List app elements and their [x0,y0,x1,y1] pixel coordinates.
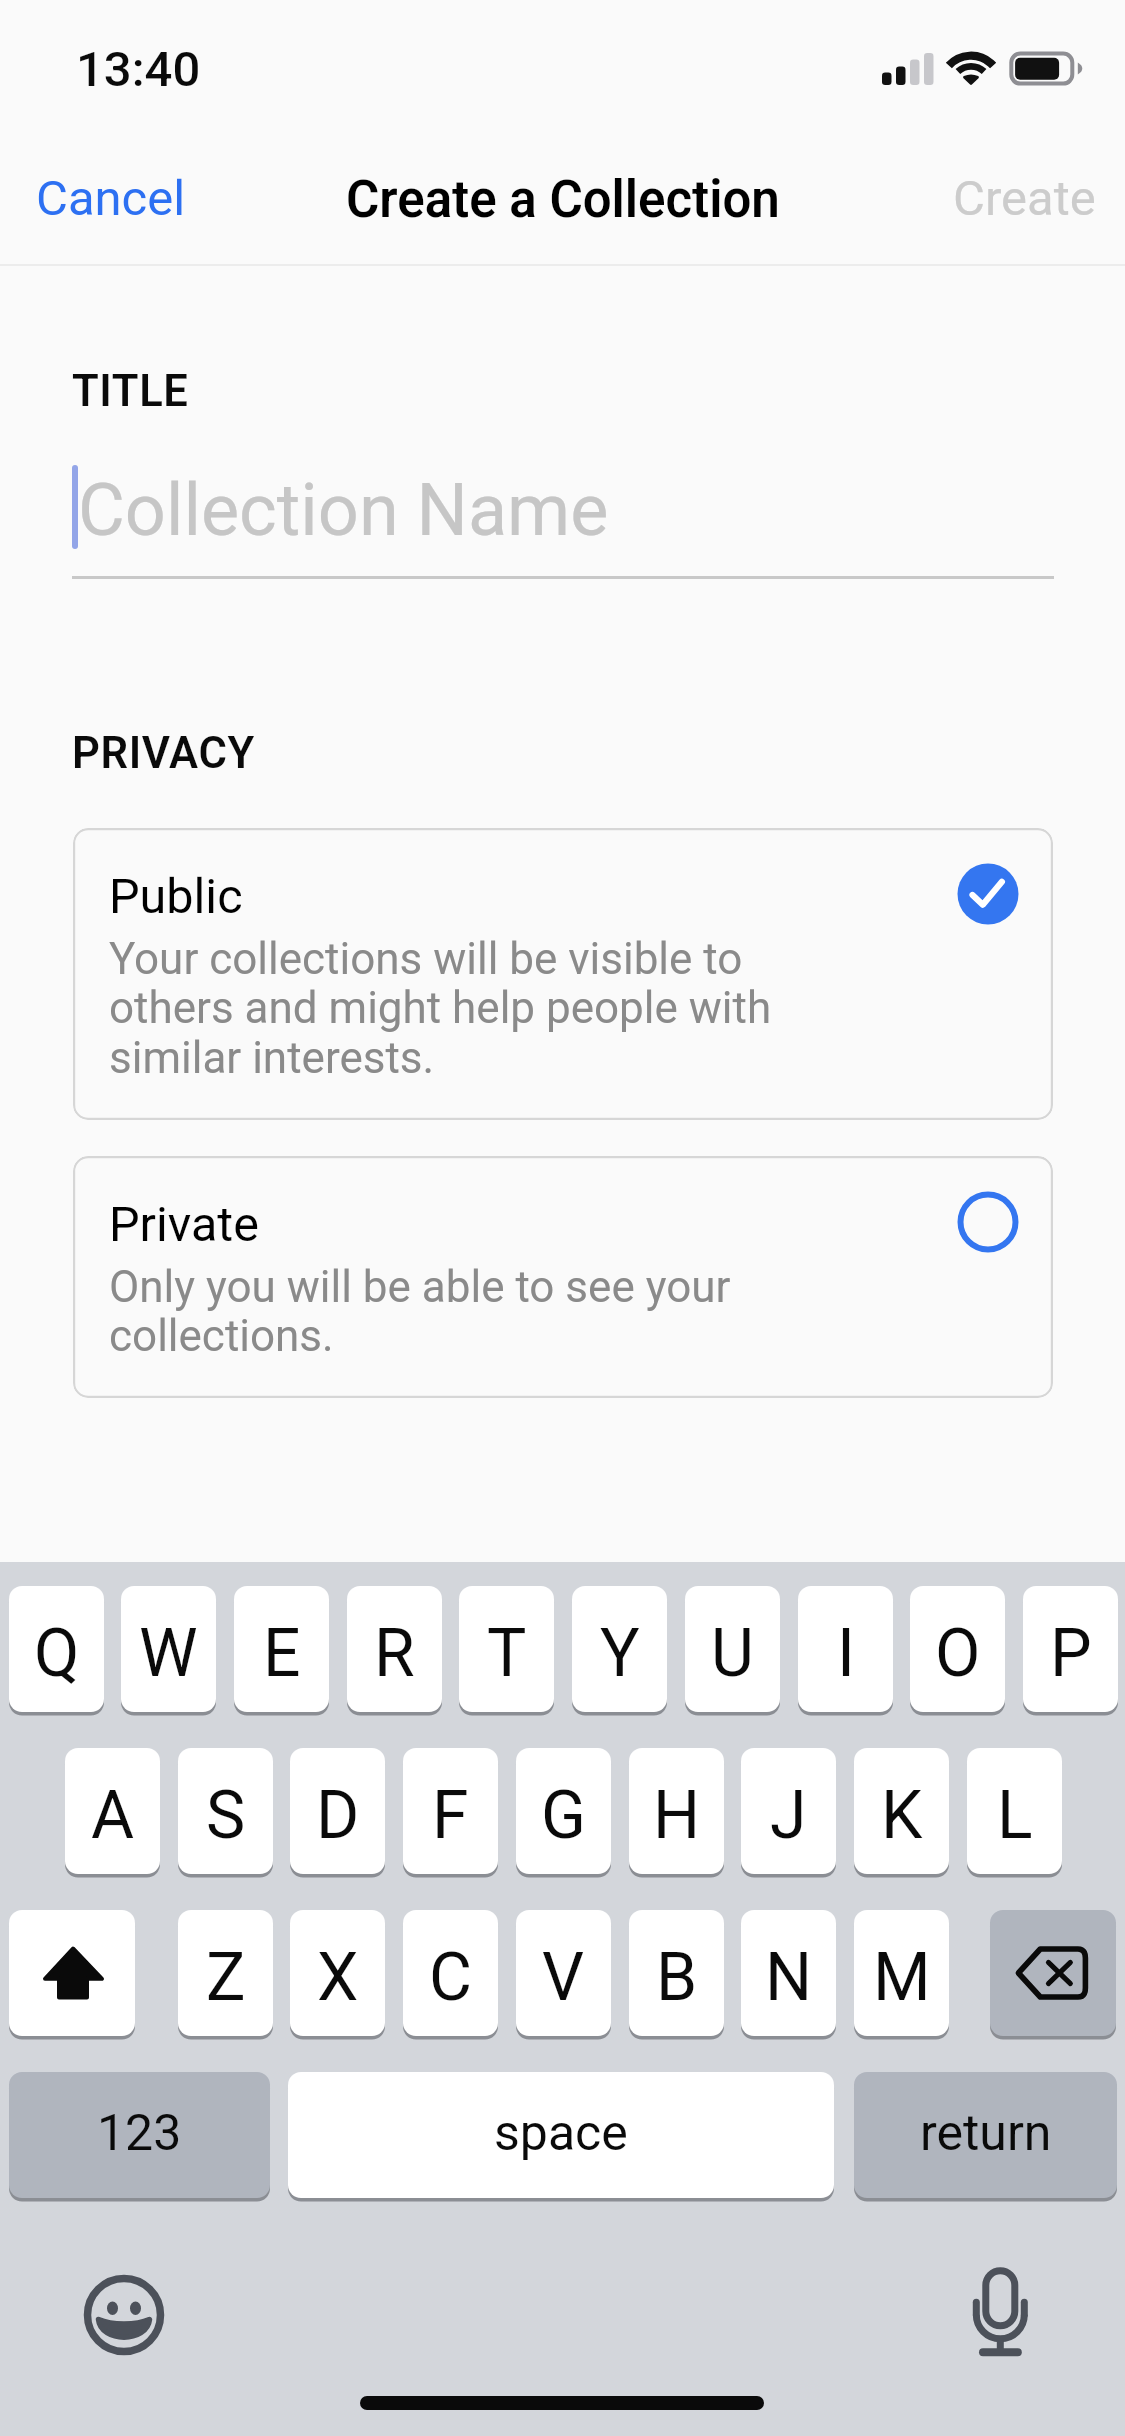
staticText: Public [109,868,243,925]
staticText: return [920,2104,1052,2163]
staticText: M [873,1939,931,2016]
staticText: U [711,1615,754,1692]
staticText: PRIVACY [72,728,255,779]
staticText: others and might help people with [109,982,772,1034]
button[interactable]: A [65,1748,160,1874]
button[interactable]: L [967,1748,1062,1874]
button[interactable]: Private [73,1156,1053,1398]
staticText: Only you will be able to see your [109,1261,731,1313]
button[interactable]: C [403,1910,498,2036]
staticText: D [316,1777,360,1854]
staticText: K [881,1777,923,1854]
button[interactable]: U [685,1586,780,1712]
button[interactable]: M [854,1910,949,2036]
staticText: Collection Name [78,468,609,552]
staticText: A [91,1777,135,1854]
staticText: H [653,1777,701,1854]
button[interactable]: R [347,1586,442,1712]
button[interactable]: Emoji keyboard [74,2265,174,2365]
staticText: X [317,1939,359,2016]
staticText: Cancel [36,170,186,227]
staticText: W [139,1615,198,1692]
staticText: I [837,1615,855,1692]
staticText: G [541,1777,586,1854]
staticText: space [494,2104,628,2163]
button[interactable]: Y [572,1586,667,1712]
staticText: F [432,1777,469,1854]
staticText: N [765,1939,813,2016]
button[interactable]: Shift [9,1910,135,2036]
staticText: J [770,1777,807,1854]
staticText: TITLE [72,366,189,417]
staticText: Private [109,1196,259,1253]
staticText: B [656,1939,698,2016]
staticText: C [429,1939,472,2016]
button[interactable]: P [1023,1586,1118,1712]
staticText: O [935,1615,981,1692]
button[interactable]: V [516,1910,611,2036]
staticText: Y [600,1615,640,1692]
button[interactable]: Cancel [0,146,216,251]
button[interactable]: Z [178,1910,273,2036]
staticText: T [487,1615,527,1692]
button[interactable]: Create [923,146,1125,251]
button[interactable]: Dictation [951,2265,1051,2365]
button[interactable]: W [121,1586,216,1712]
staticText: R [374,1615,415,1692]
button[interactable]: D [290,1748,385,1874]
button[interactable]: Public [73,828,1053,1120]
staticText: Create a Collection [346,170,780,230]
button[interactable]: S [178,1748,273,1874]
staticText: Z [206,1939,246,2016]
staticText: similar interests. [109,1032,435,1084]
staticText: S [206,1777,246,1854]
button[interactable]: 123 [9,2072,270,2198]
button[interactable]: Backspace [990,1910,1116,2036]
staticText: collections. [109,1310,334,1362]
button[interactable]: K [854,1748,949,1874]
button[interactable]: Q [9,1586,104,1712]
button[interactable]: I [798,1586,893,1712]
button[interactable]: J [741,1748,836,1874]
button[interactable]: return [854,2072,1117,2198]
button[interactable]: space [288,2072,834,2198]
button[interactable]: O [910,1586,1005,1712]
button[interactable]: H [629,1748,724,1874]
staticText: V [542,1939,585,2016]
staticText: Q [34,1615,80,1692]
staticText: 13:40 [76,41,201,98]
button[interactable]: E [234,1586,329,1712]
staticText: P [1050,1615,1092,1692]
staticText: E [263,1615,301,1692]
button[interactable]: N [741,1910,836,2036]
staticText: 123 [97,2104,182,2163]
button[interactable]: T [459,1586,554,1712]
button[interactable]: B [629,1910,724,2036]
button[interactable]: X [290,1910,385,2036]
staticText: Create [953,170,1096,227]
staticText: Your collections will be visible to [109,933,743,985]
button[interactable]: F [403,1748,498,1874]
staticText: L [997,1777,1033,1854]
button[interactable]: G [516,1748,611,1874]
